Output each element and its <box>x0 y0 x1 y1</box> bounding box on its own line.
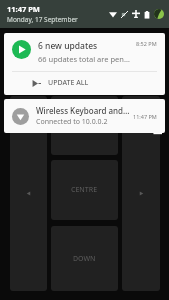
staticText: CENTRE <box>71 185 98 195</box>
button[interactable]: UP <box>51 96 118 155</box>
button[interactable]: Wireless Keyboard and Rem… <box>4 99 165 133</box>
button[interactable]: Menu <box>145 119 165 139</box>
staticText: Wireless Keyboard and Rem… <box>36 105 130 116</box>
staticText: 66 updates total are pending <box>38 54 133 64</box>
staticText: 8:52 PM <box>136 40 157 47</box>
button[interactable]: CENTRE <box>51 160 118 220</box>
staticText: Connected to 10.0.0.2 <box>36 117 108 127</box>
button[interactable]: Left <box>10 96 47 291</box>
button[interactable]: UPDATE ALL <box>4 72 165 95</box>
button[interactable]: 6 new updates <box>4 33 165 71</box>
staticText: Monday, 17 September <box>7 15 78 24</box>
staticText: 11:47 PM <box>133 113 157 120</box>
staticText: DOWN <box>73 254 96 264</box>
staticText: UP <box>80 121 90 131</box>
staticText: 11:47 PM <box>7 4 40 14</box>
button[interactable]: DOWN <box>51 226 118 291</box>
button[interactable]: Right <box>122 96 160 291</box>
staticText: UPDATE ALL <box>48 78 89 88</box>
staticText: 6 new updates <box>38 40 98 52</box>
